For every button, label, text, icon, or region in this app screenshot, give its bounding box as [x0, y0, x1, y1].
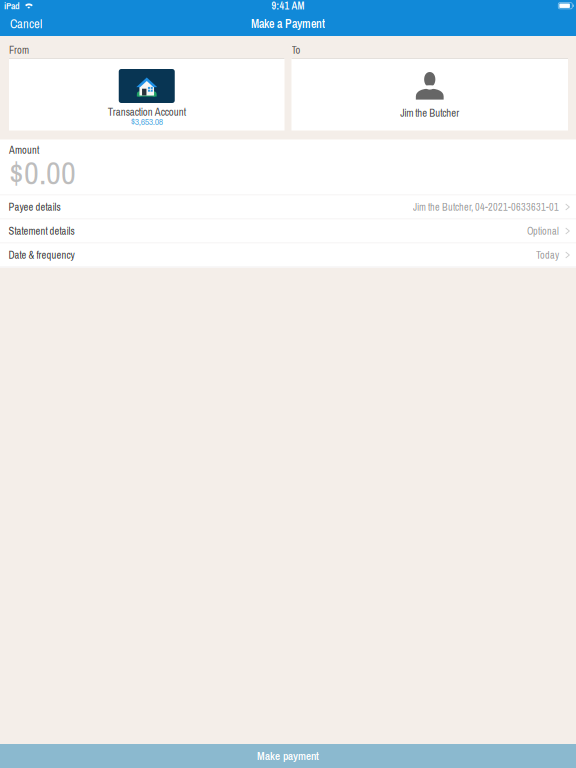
- staticText: $0.00: [9, 151, 76, 194]
- button[interactable]: Statement details: [0, 219, 576, 243]
- staticText: Date & frequency: [8, 248, 74, 262]
- staticText: Cancel: [10, 15, 42, 32]
- staticText: Transaction Account: [108, 105, 186, 119]
- staticText: Make payment: [257, 748, 319, 764]
- staticText: Jim the Butcher, 04-2021-0633631-01: [413, 200, 559, 214]
- staticText: Make a Payment: [251, 16, 325, 32]
- button[interactable]: Jim the Butcher: [291, 58, 568, 130]
- button[interactable]: Payee details: [0, 195, 576, 219]
- button[interactable]: Make payment: [0, 744, 576, 768]
- staticText: Statement details: [8, 224, 74, 238]
- button[interactable]: Transaction Account: [9, 58, 284, 130]
- staticText: Jim the Butcher: [400, 106, 459, 120]
- staticText: iPad: [4, 0, 20, 12]
- staticText: Optional: [527, 224, 559, 238]
- staticText: Payee details: [8, 200, 60, 214]
- staticText: Amount: [9, 143, 39, 157]
- staticText: Today: [536, 248, 559, 262]
- staticText: To: [291, 43, 300, 57]
- button[interactable]: Date & frequency: [0, 243, 576, 267]
- staticText: From: [9, 43, 29, 57]
- button[interactable]: Cancel: [0, 11, 52, 36]
- staticText: $3,653.08: [131, 115, 163, 128]
- staticText: 9:41 AM: [271, 0, 304, 12]
